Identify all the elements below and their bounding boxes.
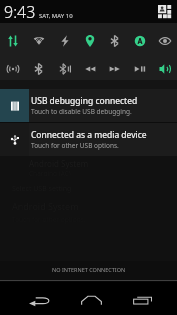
button[interactable]: Hotspot [0,52,26,80]
button[interactable]: Airplane mode [127,23,152,52]
button[interactable]: Volume [152,52,177,80]
button[interactable]: Bluetooth [26,52,52,80]
button[interactable]: Bluetooth [102,23,127,52]
staticText: Touch to disable USB debugging. [31,107,132,116]
staticText: Connected as a media device [31,129,147,141]
button[interactable]: Wi-Fi [26,23,52,52]
button[interactable]: USB debugging connected [0,89,177,122]
button[interactable]: Connected as a media device [0,123,177,156]
button[interactable]: Previous track [77,52,102,80]
button[interactable]: Mobile data [0,23,26,52]
button[interactable]: Location [77,23,102,52]
staticText: SAT, MAY 10 [39,12,73,20]
staticText: 9:43 [4,1,36,23]
staticText: USB debugging connected [31,95,138,107]
button[interactable]: Flashlight [52,23,77,52]
button[interactable]: Quick settings [158,5,173,20]
button[interactable]: Home [65,285,117,315]
staticText: Touch for other USB options. [31,141,119,150]
button[interactable]: Display brightness [152,23,177,52]
button[interactable]: Back [14,285,65,315]
staticText: NO INTERNET CONNECTION [52,266,126,273]
button[interactable]: Recent apps [117,285,169,315]
button[interactable]: Play pause [127,52,152,80]
button[interactable]: Next track [102,52,127,80]
button[interactable]: Bluetooth audio [52,52,77,80]
